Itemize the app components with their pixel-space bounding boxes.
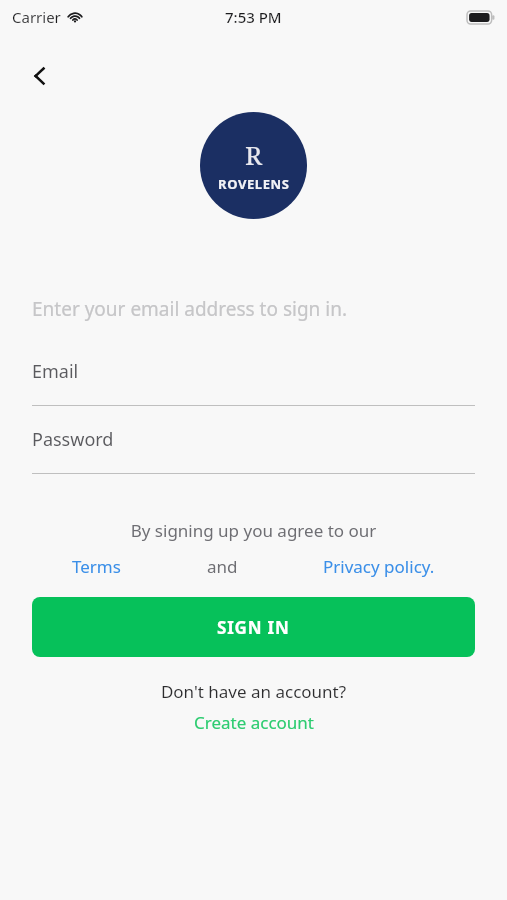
staticText: R [245, 137, 263, 172]
staticText: Password [32, 427, 114, 452]
staticText: Don't have an account? [0, 680, 507, 703]
staticText: 7:53 PM [225, 7, 282, 27]
staticText: Email [32, 359, 79, 384]
staticText: Terms [72, 555, 121, 578]
staticText: By signing up you agree to our [0, 519, 507, 542]
button[interactable]: Terms [72, 555, 121, 578]
button[interactable]: Create account [0, 711, 507, 734]
staticText: Privacy policy. [323, 555, 435, 578]
staticText: Carrier [12, 7, 61, 27]
button[interactable]: Privacy policy. [323, 555, 435, 578]
button[interactable]: SIGN IN [32, 597, 475, 657]
button[interactable]: Password [32, 427, 475, 474]
staticText: Create account [194, 711, 314, 734]
button[interactable]: Back [16, 52, 64, 100]
staticText: SIGN IN [217, 616, 290, 639]
staticText: ROVELENS [218, 175, 290, 193]
staticText: Enter your email address to sign in. [32, 296, 348, 322]
button[interactable]: Email [32, 359, 475, 406]
staticText: and [207, 555, 238, 578]
